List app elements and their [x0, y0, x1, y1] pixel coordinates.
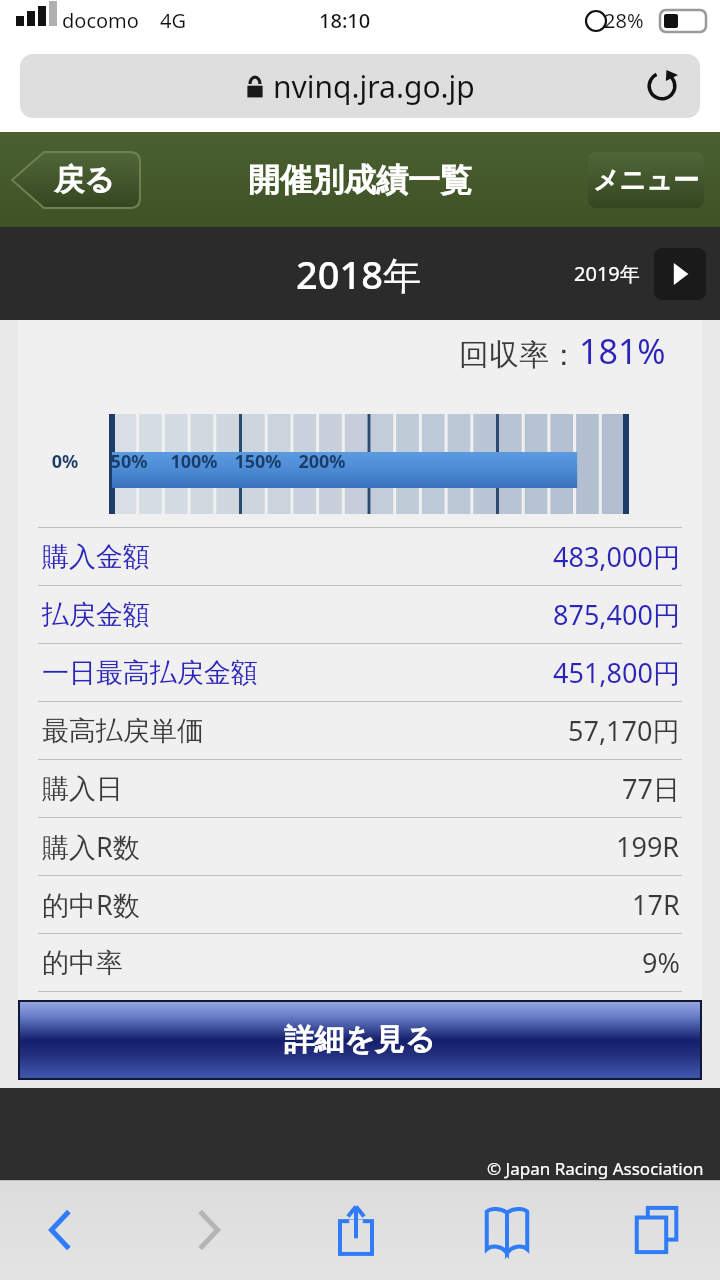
staticText: 199R — [616, 828, 680, 865]
staticText: 戻る — [54, 161, 115, 199]
staticText: 100% — [168, 449, 220, 474]
staticText: 開催別成績一覧 — [248, 160, 472, 200]
staticText: 451,800円 — [553, 654, 680, 691]
button[interactable]: nvinq.jra.go.jp — [20, 54, 700, 118]
button[interactable]: Tabs — [624, 1197, 690, 1263]
staticText: 購入金額 — [42, 540, 150, 574]
staticText: 181% — [579, 328, 666, 374]
button[interactable]: Share — [323, 1197, 389, 1263]
button[interactable]: メニュー — [588, 152, 704, 208]
button[interactable]: 一日最高払戻金額 — [18, 643, 702, 701]
button[interactable]: 戻る — [12, 152, 140, 208]
button[interactable]: 購入R数 — [18, 817, 702, 875]
staticText: 28% — [604, 7, 644, 34]
staticText: 50% — [103, 449, 155, 474]
staticText: 2018年 — [296, 248, 421, 300]
button[interactable]: 的中率 — [18, 933, 702, 991]
staticText: メニュー — [593, 164, 699, 197]
staticText: 購入日 — [42, 772, 123, 806]
staticText: 150% — [232, 449, 284, 474]
button[interactable]: 的中R数 — [18, 875, 702, 933]
button[interactable]: Bookmarks — [474, 1197, 540, 1263]
staticText: 回収率： — [459, 336, 579, 374]
staticText: docomo — [62, 7, 139, 34]
staticText: 払戻金額 — [42, 598, 150, 632]
staticText: 的中率 — [42, 946, 123, 980]
button[interactable]: 最高払戻単価 — [18, 701, 702, 759]
staticText: 最高払戻単価 — [42, 714, 204, 748]
staticText: nvinq.jra.go.jp — [273, 66, 475, 107]
button[interactable]: Back — [30, 1199, 92, 1261]
staticText: 875,400円 — [553, 596, 680, 633]
staticText: 9% — [642, 944, 680, 981]
staticText: 的中R数 — [42, 886, 140, 923]
button[interactable]: 購入日 — [18, 759, 702, 817]
button[interactable]: 払戻金額 — [18, 585, 702, 643]
staticText: 2019年 — [574, 260, 640, 287]
staticText: 4G — [160, 7, 186, 34]
button[interactable]: Next year — [654, 248, 706, 300]
staticText: 0% — [39, 449, 91, 474]
staticText: 200% — [296, 449, 348, 474]
staticText: 17R — [632, 886, 680, 923]
staticText: 詳細を見る — [284, 1021, 436, 1059]
button[interactable]: 詳細を見る — [20, 1002, 700, 1078]
button[interactable]: Forward — [177, 1199, 239, 1261]
button[interactable]: 購入金額 — [18, 527, 702, 585]
staticText: 483,000円 — [553, 538, 680, 575]
staticText: 57,170円 — [568, 712, 680, 749]
staticText: © Japan Racing Association — [487, 1157, 704, 1180]
staticText: 購入R数 — [42, 828, 140, 865]
staticText: 77日 — [622, 770, 680, 807]
staticText: 一日最高払戻金額 — [42, 656, 258, 690]
staticText: 18:10 — [319, 7, 371, 34]
